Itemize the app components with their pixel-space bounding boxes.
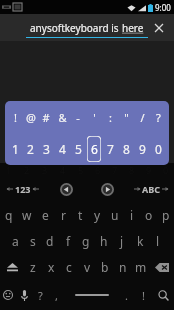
button[interactable]: o [140,201,157,228]
button[interactable]: " [118,101,134,133]
button[interactable]: p [157,201,174,228]
button[interactable]: Voice input [16,280,32,310]
button[interactable]: 1 [0,163,18,177]
button[interactable]: 2 [23,133,38,165]
button[interactable]: x [42,254,60,280]
button[interactable]: t [72,201,89,228]
button[interactable]: 0 [157,163,174,177]
staticText: 0 [163,164,169,176]
button[interactable]: @ [23,101,38,133]
button[interactable]: Clear text [152,21,166,35]
staticText: ' [93,110,96,125]
staticText: ? [156,110,161,125]
button[interactable]: Move cursor right [87,177,128,201]
button[interactable]: e [36,201,54,228]
button[interactable]: # [38,101,54,133]
button[interactable]: 8 [123,163,140,177]
staticText: & [58,110,67,125]
button[interactable]: d [41,228,59,254]
button[interactable]: 3 [36,163,54,177]
staticText: - [76,110,80,125]
button[interactable]: 5 [72,163,89,177]
button[interactable]: u [106,201,123,228]
button[interactable]: 6 [86,133,102,165]
staticText: @ [26,110,36,125]
staticText: 4 [60,164,66,176]
staticText: 0 [155,141,162,157]
staticText: i [130,207,134,223]
staticText: r [61,207,66,223]
staticText: c [66,259,72,275]
button[interactable]: ! [8,101,23,133]
button[interactable]: ? [32,280,48,310]
button[interactable]: 9 [140,163,157,177]
button[interactable]: y [89,201,106,228]
button[interactable]: Move cursor left [46,177,87,201]
button[interactable]: q [0,201,18,228]
button[interactable]: 4 [54,163,72,177]
button[interactable]: j [113,228,131,254]
button[interactable]: 0 [150,133,166,165]
button[interactable]: 8 [118,133,134,165]
staticText: a [12,233,19,249]
button[interactable]: f [59,228,77,254]
button[interactable]: l [149,228,167,254]
button[interactable]: a [7,228,24,254]
button[interactable]: m [132,254,150,280]
staticText: here [122,21,144,35]
button[interactable]: . [118,280,135,310]
button[interactable]: ! [135,280,152,310]
button[interactable]: r [54,201,72,228]
button[interactable]: Space [65,280,118,310]
button[interactable]: ? [150,101,166,133]
staticText: b [101,259,109,275]
button[interactable]: h [95,228,113,254]
button[interactable]: k [131,228,149,254]
button[interactable]: anysoftkeyboard is [0,14,174,41]
button[interactable]: Search [152,280,174,310]
button[interactable]: 7 [106,163,123,177]
button[interactable]: v [78,254,96,280]
button[interactable]: w [18,201,36,228]
staticText: 2 [27,141,34,157]
staticText: o [145,207,153,223]
button[interactable]: 3 [38,133,54,165]
button[interactable]: 5 [70,133,86,165]
button[interactable]: Emoji [0,280,16,310]
button[interactable]: i [123,201,140,228]
button[interactable]: Backspace [150,254,174,280]
staticText: , [55,288,58,303]
button[interactable]: Shift [0,254,24,280]
staticText: p [162,207,170,223]
button[interactable]: 6 [89,163,106,177]
button[interactable]: & [54,101,70,133]
button[interactable]: ' [86,101,102,133]
staticText: anysoftkeyboard is [30,21,122,35]
button[interactable]: , [48,280,65,310]
staticText: 3 [42,164,48,176]
button[interactable]: : [102,101,118,133]
button[interactable]: s [24,228,41,254]
staticText: u [111,207,119,223]
staticText: ? [38,288,43,303]
button[interactable]: 4 [54,133,70,165]
button[interactable]: n [114,254,132,280]
button[interactable]: 9 [134,133,150,165]
button[interactable]: g [77,228,95,254]
button[interactable]: b [96,254,114,280]
button[interactable]: - [70,101,86,133]
button[interactable]: ABC [128,177,174,201]
button[interactable]: 7 [102,133,118,165]
button[interactable]: c [60,254,78,280]
button[interactable]: 1 [8,133,23,165]
button[interactable]: 123 [0,177,46,201]
staticText: . [125,288,128,303]
button[interactable]: z [24,254,42,280]
staticText: ! [14,110,17,125]
button[interactable]: 2 [18,163,36,177]
staticText: j [120,233,124,249]
staticText: # [42,110,50,125]
button[interactable]: / [134,101,150,133]
staticText: 9 [139,141,146,157]
staticText: m [135,259,147,275]
